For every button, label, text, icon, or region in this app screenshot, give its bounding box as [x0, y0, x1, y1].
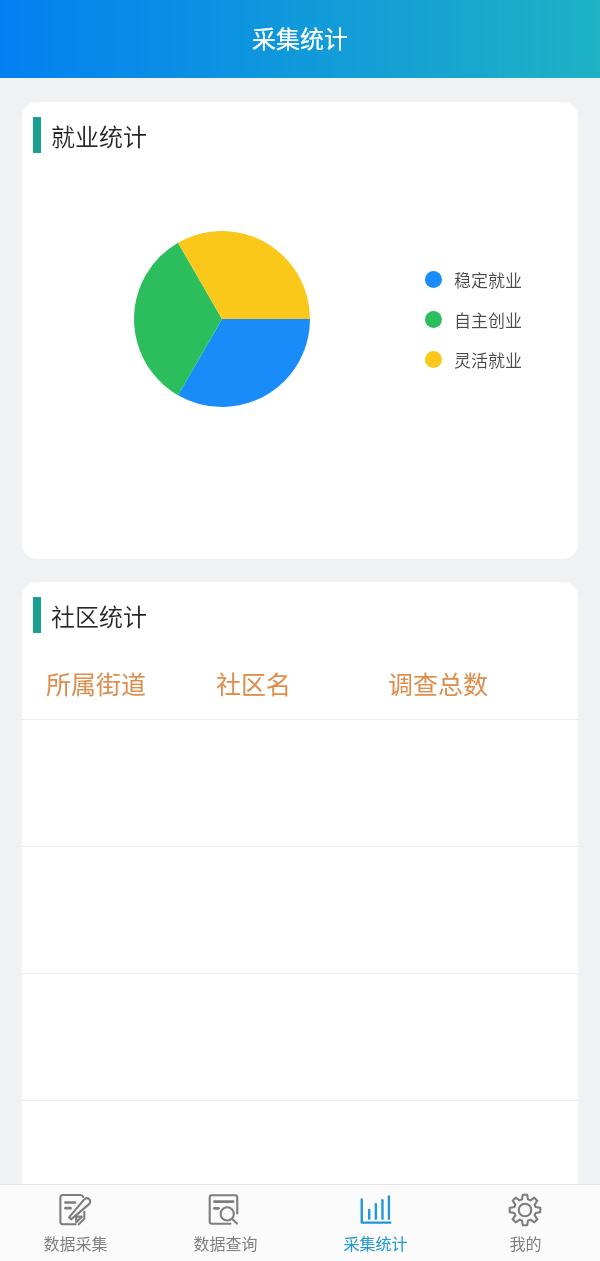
staticText: 采集统计 — [252, 20, 348, 55]
staticText: 我的 — [509, 1231, 542, 1254]
staticText: 社区统计 — [51, 598, 147, 633]
staticText: 采集统计 — [343, 1231, 408, 1254]
staticText: 所属街道 — [46, 665, 147, 701]
button[interactable]: 采集统计 — [300, 1185, 450, 1261]
other: 我的 — [508, 1193, 542, 1227]
button[interactable]: 我的 — [450, 1185, 600, 1261]
button[interactable]: 数据查询 — [150, 1185, 300, 1261]
other: 数据查询 — [208, 1193, 242, 1227]
other: 采集统计 — [358, 1193, 392, 1227]
staticText: 社区名 — [216, 665, 292, 701]
staticText: 数据采集 — [43, 1231, 108, 1254]
staticText: 自主创业 — [454, 307, 522, 332]
button[interactable]: 数据采集 — [0, 1185, 150, 1261]
staticText: 灵活就业 — [454, 347, 522, 372]
staticText: 就业统计 — [51, 118, 147, 153]
staticText: 调查总数 — [388, 665, 489, 701]
staticText: 稳定就业 — [454, 267, 522, 292]
staticText: 数据查询 — [193, 1231, 258, 1254]
other: 数据采集 — [58, 1193, 92, 1227]
